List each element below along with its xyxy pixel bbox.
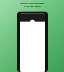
staticText: Instant Download Ready <box>20 1 44 5</box>
staticText: Grab Your Photos <box>23 5 40 8</box>
